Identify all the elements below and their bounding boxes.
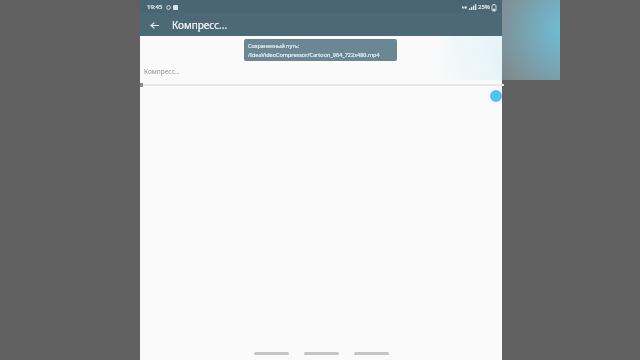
button[interactable]: Home [304,347,339,359]
staticText: Сохраненный путь: [248,42,300,49]
staticText: 25% [478,3,490,11]
button[interactable]: Back [254,347,289,359]
button[interactable]: Compression progress [140,82,502,104]
button[interactable]: Recents [354,347,389,359]
staticText: /IdeaVideoCompressor/Cartoon_964_722x480… [248,51,380,58]
staticText: Компресс... [144,67,180,76]
staticText: 19:45 [147,3,163,11]
staticText: Компресс... [172,18,228,32]
button[interactable]: Сохраненный путь: [244,39,397,61]
button[interactable]: Back [146,17,162,33]
